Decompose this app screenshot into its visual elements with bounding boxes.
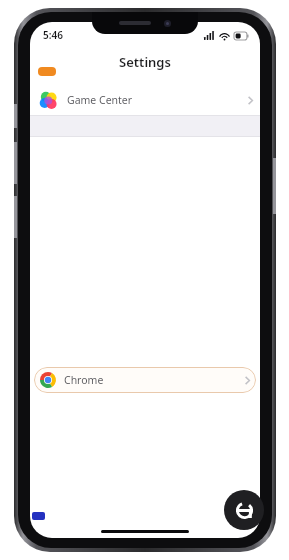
button[interactable]: Assistant	[224, 490, 264, 530]
staticText: Settings	[119, 53, 171, 71]
staticText: 5:46	[43, 28, 63, 42]
button[interactable]: Game Center	[30, 85, 260, 115]
staticText: Game Center	[67, 93, 133, 107]
button[interactable]: Chrome	[34, 367, 256, 393]
staticText: Chrome	[64, 373, 104, 387]
